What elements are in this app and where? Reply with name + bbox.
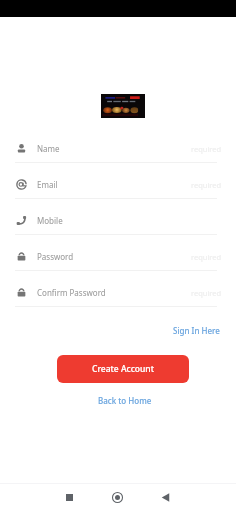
- staticText: Password: [37, 251, 74, 262]
- button[interactable]: Back: [147, 483, 183, 512]
- button[interactable]: Confirm Password: [0, 271, 236, 307]
- button[interactable]: Recent apps: [51, 483, 87, 512]
- staticText: Confirm Password: [37, 287, 106, 298]
- staticText: Sign In Here: [173, 325, 220, 336]
- button[interactable]: Password: [0, 235, 236, 271]
- staticText: Mobile: [37, 215, 63, 226]
- button[interactable]: Name: [0, 127, 236, 163]
- button[interactable]: Mobile: [0, 199, 236, 235]
- staticText: Back to Home: [98, 395, 152, 406]
- staticText: Name: [37, 143, 60, 154]
- staticText: Create Account: [92, 363, 154, 375]
- staticText: required: [191, 180, 222, 190]
- button[interactable]: Back to Home: [96, 393, 154, 408]
- button[interactable]: Create Account: [57, 355, 189, 383]
- staticText: Email: [37, 179, 58, 190]
- staticText: required: [191, 144, 222, 154]
- button[interactable]: Email: [0, 163, 236, 199]
- button[interactable]: Sign In Here: [171, 323, 222, 338]
- staticText: required: [191, 288, 222, 298]
- staticText: required: [191, 252, 222, 262]
- button[interactable]: Home: [99, 483, 135, 512]
